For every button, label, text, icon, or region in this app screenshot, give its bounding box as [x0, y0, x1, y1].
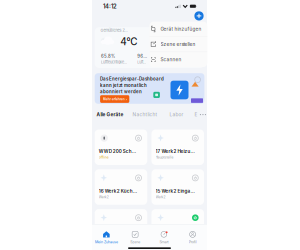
- button[interactable]: WWD 200 Sch…: [95, 129, 147, 165]
- staticText: offline: [99, 155, 109, 159]
- staticText: kann jetzt monatlich: [100, 83, 147, 88]
- staticText: 96…: [137, 53, 147, 59]
- staticText: Scannen: [161, 57, 182, 62]
- button[interactable]: Scannen: [149, 52, 207, 67]
- button[interactable]: Gerät hinzufügen: [149, 22, 207, 36]
- staticText: 15 Werk2 Einga…: [155, 188, 194, 194]
- staticText: 14:12: [103, 3, 117, 10]
- button[interactable]: E: [195, 112, 198, 117]
- button[interactable]: 16 Werk2 Küch…: [95, 169, 147, 205]
- staticText: 16 Werk2 Küch…: [99, 188, 137, 194]
- staticText: Alle Geräte: [97, 112, 124, 117]
- button[interactable]: Szene erstellen: [149, 37, 207, 52]
- button[interactable]: Mein Zuhause: [92, 229, 121, 246]
- staticText: Luftfeuchtigke…: [101, 60, 127, 64]
- staticText: Profil: [189, 240, 197, 244]
- staticText: Szene: [130, 240, 140, 244]
- button[interactable]: [151, 209, 204, 245]
- button[interactable]: Das Energiespar-Dashboard: [95, 73, 204, 104]
- button[interactable]: Smart: [149, 229, 178, 246]
- button[interactable]: Alle Geräte: [97, 112, 124, 117]
- staticText: Das Energiespar-Dashboard: [100, 76, 164, 82]
- button[interactable]: 17 Werk2 Heizu…: [151, 129, 204, 165]
- staticText: Luft…: [137, 60, 146, 64]
- staticText: Nachtlicht: [133, 112, 158, 117]
- staticText: E: [195, 112, 198, 117]
- button[interactable]: Profil: [178, 229, 207, 246]
- button[interactable]: Labor: [169, 112, 183, 117]
- staticText: Gemütliches Z…: [101, 28, 128, 33]
- staticText: 17 Werk2 Heizu…: [155, 148, 194, 154]
- button[interactable]: Mehr: [200, 112, 206, 118]
- staticText: Mein Zuhause: [95, 240, 118, 244]
- staticText: Hauptstelle: [155, 155, 173, 159]
- staticText: 65.8%: [101, 53, 115, 59]
- staticText: Werk2: [155, 195, 165, 199]
- button[interactable]: 15 Werk2 Einga…: [151, 169, 204, 205]
- staticText: Szene erstellen: [161, 41, 196, 47]
- staticText: Labor: [169, 112, 183, 117]
- button[interactable]: Nachtlicht: [133, 112, 158, 117]
- button[interactable]: Szene: [121, 229, 150, 246]
- staticText: 4°C: [120, 36, 137, 47]
- button[interactable]: [95, 209, 147, 245]
- staticText: abonniert werden: [100, 89, 142, 94]
- staticText: Mehr erfahren ›: [103, 97, 127, 101]
- staticText: WWD 200 Sch…: [99, 148, 136, 154]
- button[interactable]: Hinzufügen: [193, 10, 204, 21]
- staticText: Werk2: [99, 195, 109, 199]
- staticText: Smart: [159, 240, 168, 244]
- staticText: Gerät hinzufügen: [161, 26, 202, 32]
